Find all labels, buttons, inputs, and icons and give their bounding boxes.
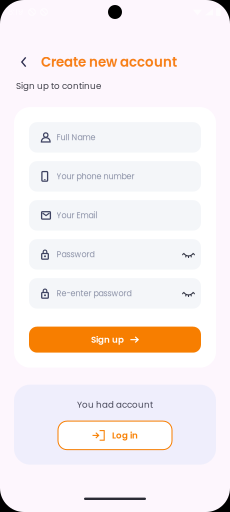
button[interactable]: Your Email [29,200,201,231]
staticText: Create new account [41,53,177,71]
staticText: Sign up to continue [16,80,101,92]
button[interactable]: Re-enter password [29,278,201,309]
button[interactable]: Sign up [29,327,201,353]
staticText: Sign up [91,334,124,346]
button[interactable]: Back [14,52,34,72]
staticText: Log in [112,429,138,441]
button[interactable]: Full Name [29,122,201,153]
staticText: You had account [77,399,153,411]
staticText: Password [56,249,94,260]
staticText: Your Email [56,210,97,221]
button[interactable]: Your phone number [29,161,201,192]
staticText: Your phone number [56,171,134,182]
staticText: Full Name [56,132,95,143]
button[interactable]: Log in [58,421,172,450]
staticText: Re-enter password [56,288,131,299]
button[interactable]: Password [29,239,201,270]
